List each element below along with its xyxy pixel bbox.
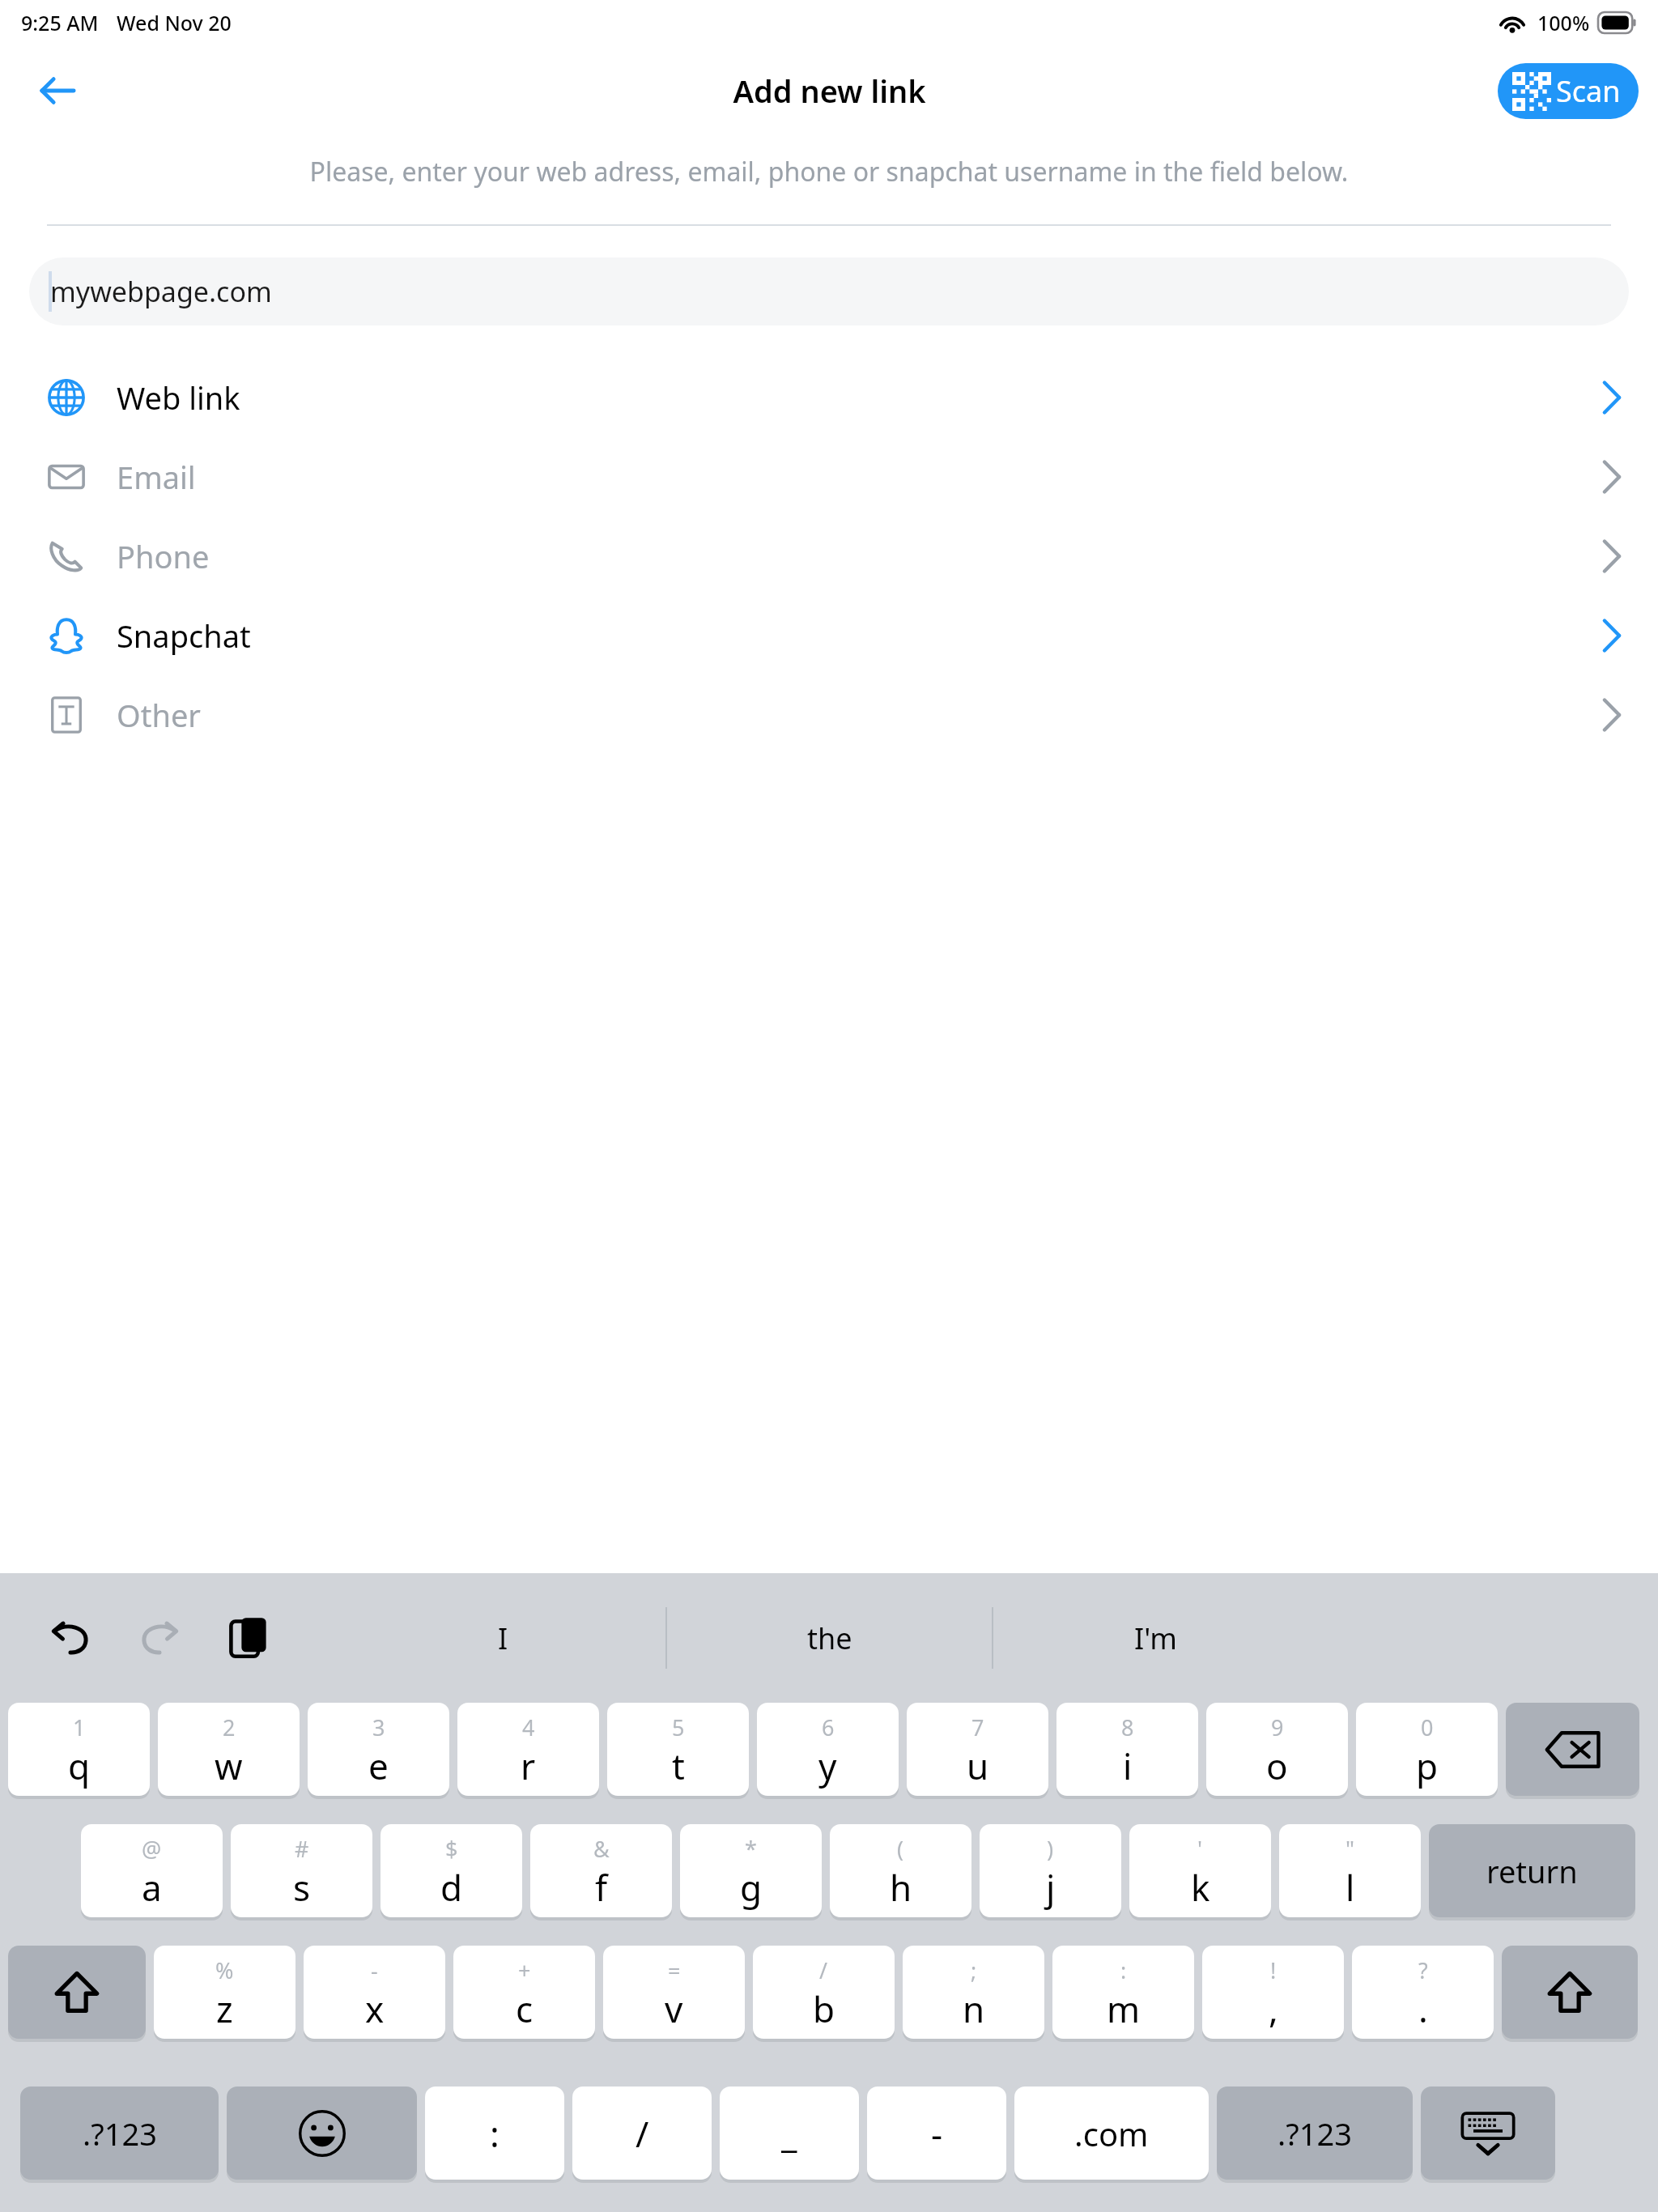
staticText: = <box>668 1955 681 1985</box>
staticText: % <box>215 1955 234 1985</box>
staticText: q <box>68 1742 91 1790</box>
staticText: return <box>1486 1850 1578 1892</box>
button[interactable]: I'm <box>993 1573 1318 1703</box>
staticText: Scan <box>1556 71 1621 111</box>
button[interactable]: Snapchat <box>0 596 1658 675</box>
button[interactable]: _ <box>720 2087 859 2180</box>
staticText: " <box>1346 1834 1355 1864</box>
staticText: , <box>1269 1984 1278 2033</box>
button[interactable]: I <box>340 1573 665 1703</box>
button[interactable]: Other <box>0 675 1658 755</box>
button[interactable]: + <box>453 1946 595 2039</box>
button[interactable]: .?123 <box>1217 2087 1413 2180</box>
staticText: ( <box>897 1834 904 1864</box>
staticText: y <box>818 1742 837 1790</box>
staticText: 4 <box>522 1712 535 1742</box>
staticText: ! <box>1270 1955 1277 1985</box>
button[interactable]: ( <box>830 1824 971 1917</box>
button[interactable]: Shift <box>8 1946 146 2039</box>
button[interactable]: Web link <box>0 358 1658 437</box>
button[interactable]: ) <box>980 1824 1121 1917</box>
staticText: 1 <box>73 1712 86 1742</box>
staticText: / <box>636 2109 649 2158</box>
staticText: .?123 <box>1278 2112 1352 2155</box>
button[interactable]: 8 <box>1056 1703 1198 1796</box>
staticText: u <box>967 1742 989 1790</box>
button[interactable]: Backspace <box>1506 1703 1639 1796</box>
staticText: 100% <box>1537 9 1590 36</box>
button[interactable]: - <box>867 2087 1006 2180</box>
staticText: - <box>931 2109 943 2158</box>
staticText: f <box>595 1863 608 1912</box>
staticText: o <box>1266 1742 1288 1790</box>
staticText: # <box>295 1834 309 1864</box>
staticText: 0 <box>1421 1712 1434 1742</box>
staticText: Please, enter your web adress, email, ph… <box>49 154 1609 189</box>
button[interactable]: the <box>667 1573 992 1703</box>
button[interactable]: 1 <box>8 1703 150 1796</box>
button[interactable]: ; <box>903 1946 1044 2039</box>
button[interactable]: 0 <box>1356 1703 1498 1796</box>
button[interactable]: @ <box>81 1824 223 1917</box>
button[interactable]: : <box>425 2087 564 2180</box>
button[interactable]: / <box>753 1946 895 2039</box>
staticText: g <box>740 1863 763 1912</box>
button[interactable]: Shift <box>1502 1946 1638 2039</box>
staticText: + <box>518 1955 531 1985</box>
button[interactable]: Emoji <box>227 2087 417 2180</box>
staticText: 7 <box>971 1712 984 1742</box>
button[interactable]: Redo <box>130 1608 189 1668</box>
button[interactable]: return <box>1429 1824 1635 1917</box>
button[interactable]: " <box>1279 1824 1421 1917</box>
button[interactable]: Undo <box>40 1608 100 1668</box>
staticText: ? <box>1418 1955 1428 1985</box>
button[interactable]: $ <box>380 1824 522 1917</box>
staticText: .com <box>1074 2112 1149 2155</box>
staticText: e <box>368 1742 389 1790</box>
button[interactable]: 6 <box>757 1703 899 1796</box>
button[interactable]: 2 <box>158 1703 300 1796</box>
button[interactable]: - <box>304 1946 445 2039</box>
button[interactable]: = <box>603 1946 745 2039</box>
button[interactable]: & <box>530 1824 672 1917</box>
staticText: Add new link <box>733 70 926 112</box>
staticText: p <box>1416 1742 1439 1790</box>
button[interactable]: % <box>154 1946 295 2039</box>
staticText: c <box>516 1984 534 2033</box>
staticText: _ <box>781 2109 797 2158</box>
staticText: a <box>142 1863 162 1912</box>
staticText: Other <box>117 694 202 736</box>
staticText: t <box>672 1742 685 1790</box>
staticText: I'm <box>1134 1619 1177 1658</box>
button[interactable]: .?123 <box>20 2087 219 2180</box>
button[interactable]: ? <box>1352 1946 1494 2039</box>
staticText: * <box>745 1834 757 1864</box>
button[interactable]: mywebpage.com <box>29 257 1629 325</box>
button[interactable]: ! <box>1202 1946 1344 2039</box>
button[interactable]: / <box>572 2087 712 2180</box>
button[interactable]: ' <box>1129 1824 1271 1917</box>
staticText: r <box>521 1742 536 1790</box>
button[interactable]: Email <box>0 437 1658 517</box>
staticText: ' <box>1197 1834 1203 1864</box>
button[interactable]: : <box>1052 1946 1194 2039</box>
button[interactable]: 4 <box>457 1703 599 1796</box>
staticText: w <box>215 1742 243 1790</box>
staticText: @ <box>142 1834 162 1864</box>
button[interactable]: 5 <box>607 1703 749 1796</box>
staticText: Snapchat <box>117 615 251 657</box>
button[interactable]: 9 <box>1206 1703 1348 1796</box>
button[interactable]: Phone <box>0 517 1658 596</box>
button[interactable]: Back <box>28 61 87 121</box>
button[interactable]: * <box>680 1824 822 1917</box>
button[interactable]: 3 <box>308 1703 449 1796</box>
staticText: n <box>963 1984 985 2033</box>
button[interactable]: 7 <box>907 1703 1048 1796</box>
button[interactable]: # <box>231 1824 372 1917</box>
button[interactable]: Hide keyboard <box>1421 2087 1555 2180</box>
staticText: 8 <box>1121 1712 1134 1742</box>
staticText: ) <box>1047 1834 1054 1864</box>
button[interactable]: .com <box>1014 2087 1209 2180</box>
button[interactable]: Scan <box>1498 63 1639 119</box>
button[interactable]: Paste <box>219 1608 278 1668</box>
